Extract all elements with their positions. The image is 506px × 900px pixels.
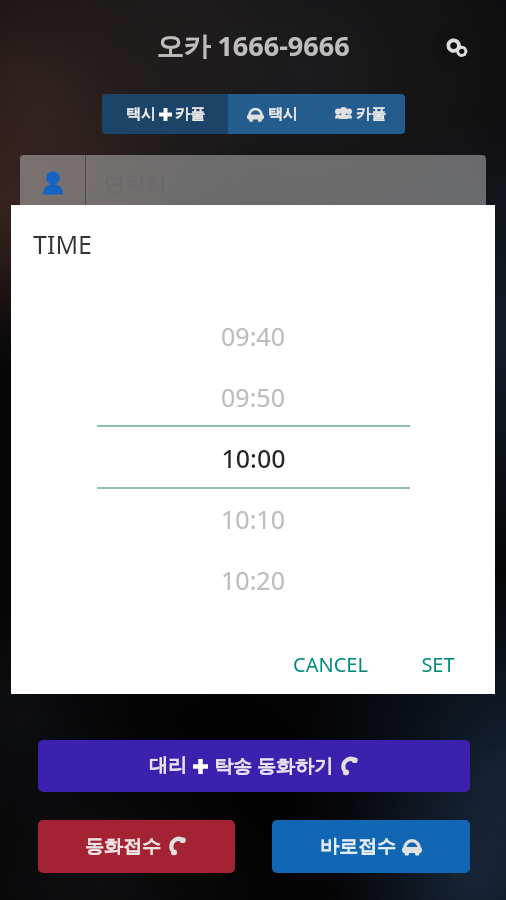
- staticText: 택시: [126, 105, 156, 124]
- button[interactable]: 택시: [228, 94, 316, 134]
- button[interactable]: 대리: [38, 740, 470, 792]
- staticText: 카풀: [175, 105, 205, 124]
- button[interactable]: 동화접수: [38, 820, 235, 873]
- staticText: 카풀: [356, 105, 386, 124]
- staticText: 바로접수: [320, 835, 396, 859]
- staticText: 10:00: [221, 441, 286, 475]
- button[interactable]: 09:50: [11, 379, 495, 415]
- button[interactable]: CANCEL: [293, 642, 368, 686]
- button[interactable]: 연락처: [20, 155, 486, 213]
- staticText: 택시: [268, 105, 298, 124]
- button[interactable]: SET: [421, 642, 455, 686]
- button[interactable]: 10:20: [11, 562, 495, 598]
- staticText: 09:40: [221, 319, 285, 353]
- staticText: 동화접수: [85, 835, 161, 859]
- button[interactable]: Settings: [433, 24, 481, 72]
- button[interactable]: 10:00: [11, 440, 495, 476]
- staticText: 탁송 동화하기: [214, 753, 333, 779]
- staticText: SET: [421, 651, 455, 678]
- button[interactable]: 10:10: [11, 501, 495, 537]
- staticText: 10:20: [221, 563, 285, 597]
- staticText: 09:50: [221, 380, 285, 414]
- staticText: CANCEL: [293, 651, 368, 678]
- button[interactable]: 택시: [102, 94, 228, 134]
- staticText: TIME: [33, 227, 92, 261]
- button[interactable]: 카풀: [316, 94, 405, 134]
- button[interactable]: 09:40: [11, 318, 495, 354]
- staticText: 10:10: [221, 502, 285, 536]
- button[interactable]: 바로접수: [272, 820, 470, 873]
- staticText: 대리: [149, 754, 187, 778]
- staticText: 오카 1666-9666: [156, 27, 350, 64]
